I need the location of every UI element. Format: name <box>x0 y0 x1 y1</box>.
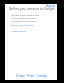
staticText: Before you continue to Google <box>9 7 55 11</box>
staticText: Google uses cookies and <box>11 13 39 16</box>
staticText: Sign in <box>46 4 56 8</box>
staticText: Select <box>11 23 19 26</box>
button[interactable]: Privacy <box>16 74 25 78</box>
staticText: more options <box>19 23 35 26</box>
staticText: data to deliver services <box>11 16 37 19</box>
button[interactable]: Settings <box>37 74 47 78</box>
button[interactable]: Terms <box>27 74 35 78</box>
staticText: Learn more <box>12 29 25 32</box>
staticText: Terms <box>27 74 35 78</box>
button[interactable]: Sign in <box>45 4 57 8</box>
button[interactable]: more options <box>19 23 35 26</box>
staticText: and measure audience <box>11 19 37 22</box>
staticText: Settings <box>37 74 47 78</box>
staticText: Privacy <box>16 74 25 78</box>
button[interactable]: Learn more <box>12 29 25 32</box>
